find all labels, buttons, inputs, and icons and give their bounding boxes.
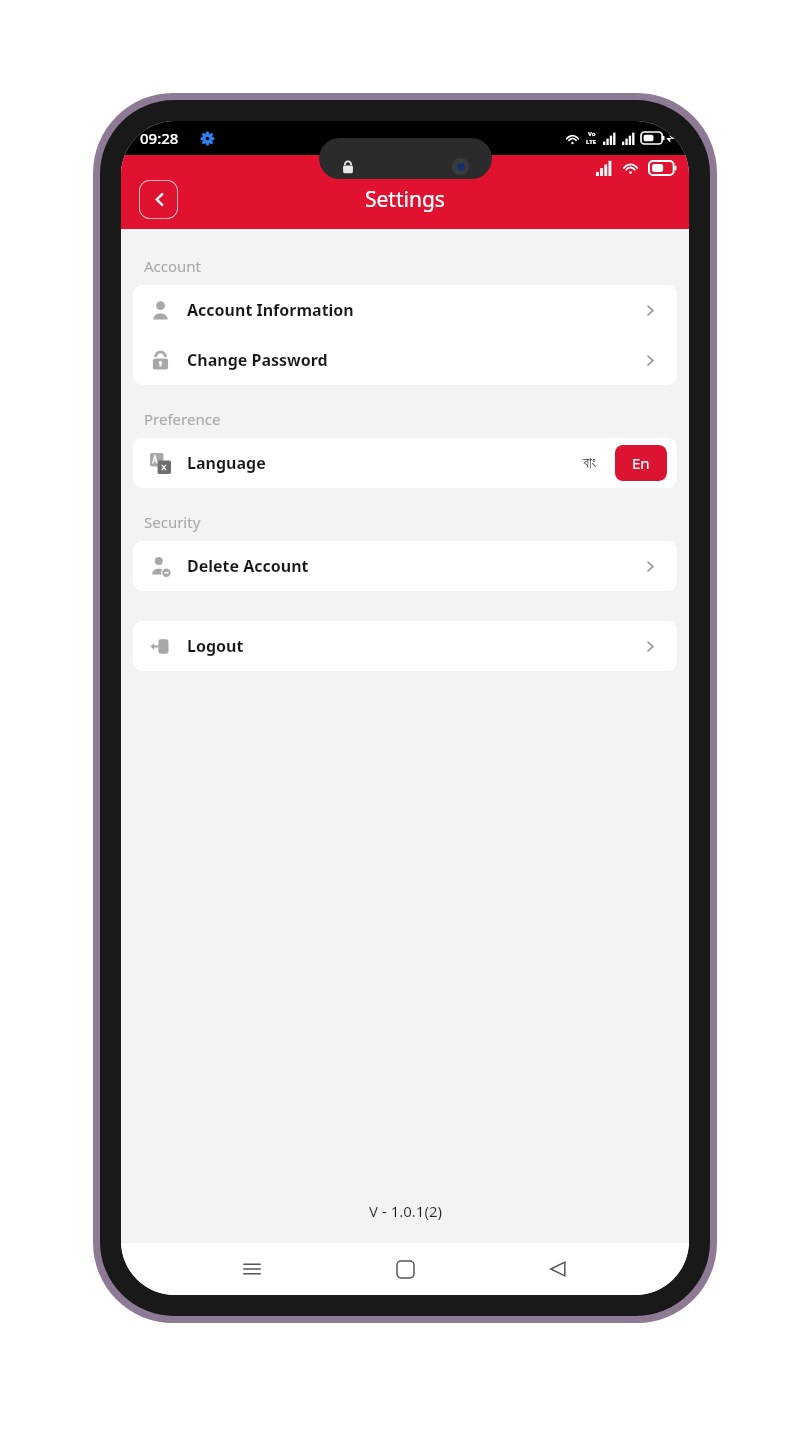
- button[interactable]: Back: [139, 180, 178, 219]
- staticText: Settings: [365, 185, 445, 214]
- button[interactable]: Back: [536, 1247, 580, 1291]
- button[interactable]: En: [615, 445, 667, 481]
- button[interactable]: বাং: [565, 445, 615, 481]
- staticText: বাং: [583, 456, 597, 471]
- staticText: 09:28: [140, 128, 179, 148]
- button[interactable]: Home: [383, 1247, 427, 1291]
- staticText: Logout: [187, 635, 244, 657]
- staticText: Change Password: [187, 349, 328, 371]
- button[interactable]: Delete Account: [133, 541, 677, 591]
- staticText: LTE: [586, 138, 597, 146]
- staticText: Preference: [144, 409, 221, 429]
- button[interactable]: Account Information: [133, 285, 677, 335]
- staticText: V - 1.0.1(2): [369, 1201, 442, 1221]
- staticText: Account: [144, 256, 202, 276]
- staticText: Language: [187, 452, 266, 474]
- staticText: Account Information: [187, 299, 354, 321]
- staticText: Vo: [588, 130, 596, 138]
- staticText: Delete Account: [187, 555, 309, 577]
- button[interactable]: Recent apps: [230, 1247, 274, 1291]
- button[interactable]: Logout: [133, 621, 677, 671]
- staticText: Security: [144, 512, 201, 532]
- staticText: En: [632, 453, 650, 473]
- button[interactable]: Change Password: [133, 335, 677, 385]
